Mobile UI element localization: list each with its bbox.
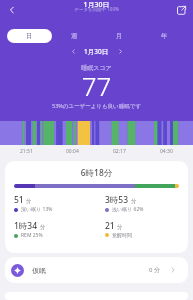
staticText: 51 — [14, 194, 24, 206]
button[interactable]: 週 — [52, 29, 97, 43]
button[interactable]: 月 — [97, 29, 142, 43]
staticText: 深い眠り 13% — [21, 206, 53, 213]
staticText: 1時34 — [14, 220, 38, 232]
button[interactable]: Previous day — [67, 45, 79, 57]
staticText: 02:17 — [113, 148, 126, 155]
staticText: 年 — [161, 32, 168, 40]
staticText: 分 — [26, 198, 32, 205]
staticText: データを同期中 100% — [0, 6, 193, 12]
staticText: REM 25% — [21, 232, 43, 239]
staticText: 覚醒時間 — [112, 232, 132, 238]
staticText: 1月30日 — [84, 47, 109, 56]
staticText: 6時18分 — [5, 167, 188, 179]
staticText: 月 — [116, 32, 123, 40]
staticText: 1月30日 — [0, 0, 193, 10]
staticText: 日 — [26, 32, 33, 40]
staticText: 00:04 — [66, 148, 79, 155]
staticText: 分 — [131, 198, 137, 205]
staticText: 睡眠スコア — [0, 64, 193, 72]
staticText: 04:30 — [160, 148, 173, 155]
staticText: 21:51 — [20, 148, 33, 155]
button[interactable]: 日 — [7, 29, 52, 43]
button[interactable]: Back — [3, 1, 21, 19]
staticText: 0 分 — [149, 266, 160, 274]
staticText: 週 — [71, 32, 78, 40]
button[interactable]: 年 — [142, 29, 187, 43]
staticText: 77 — [0, 68, 193, 103]
staticText: 浅い眠り 62% — [112, 206, 144, 213]
staticText: 3時53 — [105, 194, 129, 206]
button[interactable]: Next day — [114, 45, 126, 57]
button[interactable]: Share — [172, 1, 190, 19]
staticText: 仮眠 — [32, 266, 46, 275]
staticText: 53%のユーザーよりも良い睡眠です — [0, 102, 193, 110]
staticText: 21 — [105, 220, 115, 232]
staticText: 分 — [117, 224, 123, 231]
button[interactable]: 仮眠 — [5, 257, 188, 283]
staticText: 分 — [40, 224, 46, 231]
